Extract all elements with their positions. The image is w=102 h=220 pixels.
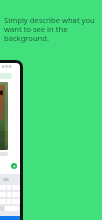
button[interactable]: Send <box>11 163 17 169</box>
staticText: Simply describe what you want to see in … <box>4 15 96 44</box>
button[interactable]: Prompt chip <box>0 73 12 79</box>
